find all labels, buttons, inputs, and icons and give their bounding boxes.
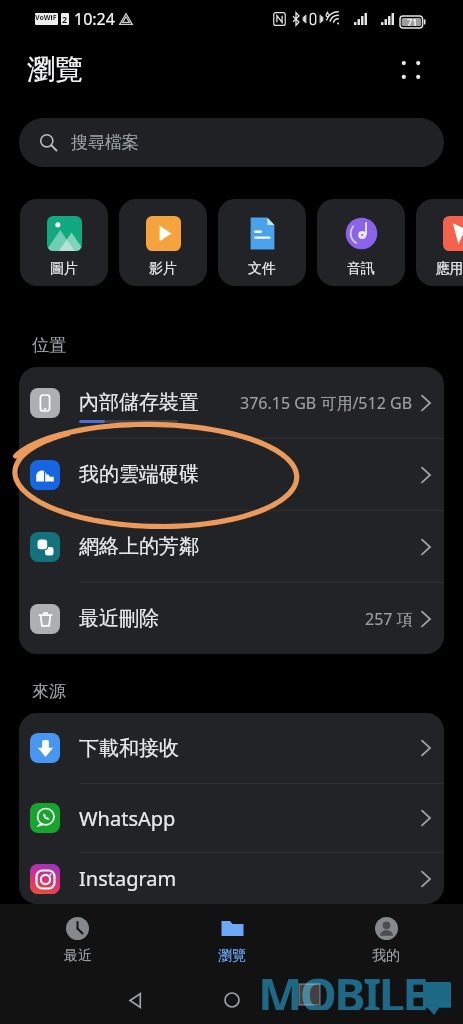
staticText: 音訊 [317, 260, 405, 278]
button[interactable]: More options [387, 46, 435, 94]
button[interactable]: WhatsApp [19, 784, 444, 852]
staticText: 內部儲存裝置 [79, 390, 199, 415]
staticText: 來源 [32, 681, 66, 702]
staticText: 71 [407, 16, 418, 28]
button[interactable]: 下載和接收 [19, 713, 444, 783]
staticText: 搜尋檔案 [71, 132, 139, 153]
staticText: WhatsApp [79, 805, 176, 832]
button[interactable]: 文件 [218, 199, 306, 286]
staticText: 376.15 GB 可用/512 GB [240, 392, 413, 414]
button[interactable]: 我的雲端硬碟 [19, 439, 444, 510]
staticText: MOBILE [258, 962, 427, 1010]
button[interactable]: 搜尋檔案 [19, 118, 444, 167]
staticText: VoWiFi [35, 13, 58, 25]
staticText: 文件 [218, 260, 306, 278]
staticText: 最近刪除 [79, 606, 159, 631]
staticText: 瀏覽 [27, 52, 83, 87]
staticText: 257 項 [365, 608, 413, 630]
staticText: 最近 [64, 947, 92, 965]
staticText: 我的雲端硬碟 [79, 462, 199, 487]
staticText: 瀏覽 [218, 947, 246, 965]
staticText: 位置 [32, 335, 66, 356]
button[interactable]: 最近刪除 [19, 583, 444, 654]
staticText: 10:24 [74, 8, 115, 30]
staticText: 網絡上的芳鄰 [79, 534, 199, 559]
staticText: 下載和接收 [79, 736, 179, 761]
button[interactable]: Instagram [19, 853, 444, 904]
button[interactable]: 我的 [309, 904, 463, 976]
button[interactable]: 內部儲存裝置 [19, 367, 444, 438]
staticText: 應用 [416, 260, 463, 278]
button[interactable]: Home [209, 977, 255, 1023]
button[interactable]: 音訊 [317, 199, 405, 286]
staticText: 我的 [372, 947, 400, 965]
button[interactable]: 最近 [0, 904, 155, 976]
button[interactable]: 圖片 [20, 199, 108, 286]
staticText: 圖片 [20, 260, 108, 278]
button[interactable]: 影片 [119, 199, 207, 286]
button[interactable]: 網絡上的芳鄰 [19, 511, 444, 582]
staticText: 影片 [119, 260, 207, 278]
staticText: 2 [62, 13, 68, 25]
button[interactable]: 應用 [416, 199, 463, 286]
button[interactable]: Back [112, 977, 158, 1023]
staticText: Instagram [79, 865, 177, 892]
button[interactable]: 瀏覽 [155, 904, 309, 976]
